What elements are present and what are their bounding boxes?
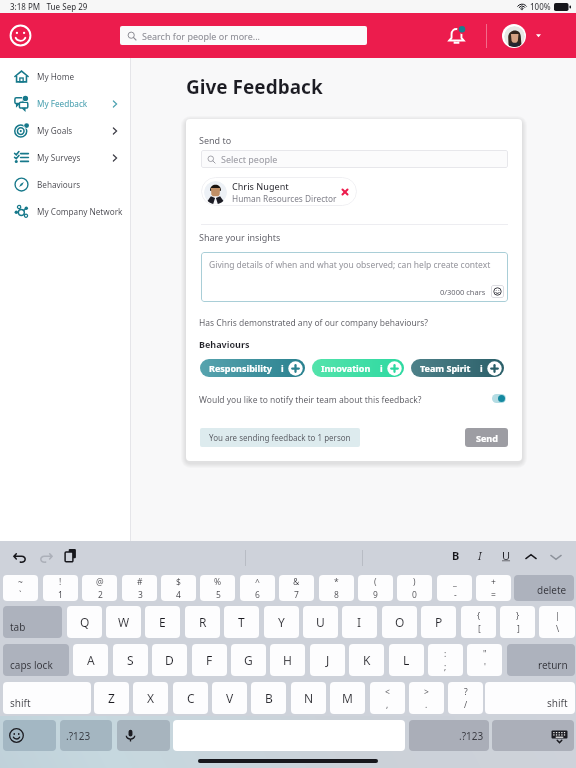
button[interactable]: ) bbox=[397, 575, 432, 601]
button[interactable]: My Feedback bbox=[0, 90, 131, 117]
button[interactable]: Previous bbox=[523, 549, 539, 565]
button[interactable]: F bbox=[192, 644, 227, 676]
button[interactable]: X bbox=[133, 682, 168, 714]
button[interactable]: Emoji bbox=[3, 720, 56, 751]
button[interactable]: Remove Chris Nugent bbox=[338, 185, 352, 199]
button[interactable]: % bbox=[200, 575, 235, 601]
button[interactable]: ? bbox=[448, 682, 483, 714]
staticText: .?123 bbox=[66, 729, 91, 743]
button[interactable]: My Home bbox=[0, 63, 131, 90]
button[interactable]: ~ bbox=[3, 575, 38, 601]
button[interactable]: return bbox=[507, 644, 575, 676]
button[interactable]: M bbox=[330, 682, 365, 714]
button[interactable]: Home bbox=[9, 24, 32, 47]
button[interactable]: Redo bbox=[38, 549, 54, 565]
button[interactable]: .?123 bbox=[60, 720, 112, 751]
button[interactable]: > bbox=[409, 682, 444, 714]
button[interactable]: Account menu bbox=[534, 31, 543, 40]
button[interactable]: Innovation bbox=[312, 359, 404, 377]
button[interactable]: B bbox=[251, 682, 286, 714]
button[interactable]: .?123 bbox=[409, 720, 489, 751]
button[interactable]: K bbox=[349, 644, 384, 676]
button[interactable]: Responsibility bbox=[200, 359, 305, 377]
button[interactable]: " bbox=[467, 644, 502, 676]
button[interactable]: ! bbox=[43, 575, 78, 601]
button[interactable]: Emoji bbox=[491, 285, 504, 298]
button[interactable]: < bbox=[370, 682, 405, 714]
button[interactable]: shift bbox=[485, 682, 575, 714]
button[interactable]: H bbox=[270, 644, 305, 676]
staticText: Giving details of when and what you obse… bbox=[209, 259, 491, 271]
button[interactable]: Notifications bbox=[447, 26, 466, 45]
button[interactable]: Behaviours bbox=[0, 171, 131, 198]
button[interactable]: My Goals bbox=[0, 117, 131, 144]
button[interactable]: : bbox=[428, 644, 463, 676]
button[interactable]: { bbox=[461, 606, 496, 638]
button[interactable]: Hide keyboard bbox=[492, 720, 574, 751]
button[interactable]: # bbox=[122, 575, 157, 601]
staticText: 3:18 PM Tue Sep 29 bbox=[10, 1, 88, 12]
staticText: My Feedback bbox=[37, 98, 88, 109]
button[interactable]: Italic bbox=[472, 547, 488, 563]
button[interactable]: shift bbox=[3, 682, 91, 714]
button[interactable]: Paste bbox=[63, 548, 78, 563]
button[interactable]: ( bbox=[358, 575, 393, 601]
staticText: Send bbox=[476, 432, 498, 444]
button[interactable]: } bbox=[500, 606, 535, 638]
staticText: > bbox=[424, 686, 429, 698]
button[interactable]: Profile bbox=[502, 24, 526, 48]
button[interactable]: U bbox=[303, 606, 338, 638]
button[interactable]: Underline bbox=[498, 547, 514, 563]
button[interactable]: V bbox=[212, 682, 247, 714]
button[interactable]: Giving details of when and what you obse… bbox=[201, 252, 508, 302]
button[interactable]: My Surveys bbox=[0, 144, 131, 171]
button[interactable]: E bbox=[145, 606, 180, 638]
button[interactable]: Bold bbox=[448, 547, 464, 563]
button[interactable]: T bbox=[224, 606, 259, 638]
staticText: .?123 bbox=[459, 729, 484, 743]
button[interactable]: Y bbox=[264, 606, 299, 638]
button[interactable]: I bbox=[342, 606, 377, 638]
button[interactable]: C bbox=[173, 682, 208, 714]
button[interactable]: Notify team toggle bbox=[492, 394, 506, 403]
button[interactable]: W bbox=[106, 606, 141, 638]
staticText: K bbox=[363, 652, 371, 668]
button[interactable]: ^ bbox=[240, 575, 275, 601]
button[interactable]: N bbox=[291, 682, 326, 714]
button[interactable]: O bbox=[382, 606, 417, 638]
button[interactable]: _ bbox=[437, 575, 472, 601]
button[interactable]: caps lock bbox=[3, 644, 69, 676]
staticText: Innovation bbox=[321, 362, 371, 374]
button[interactable]: J bbox=[310, 644, 345, 676]
button[interactable]: Search for people or more... bbox=[120, 26, 367, 45]
button[interactable]: My Company Network bbox=[0, 198, 131, 225]
staticText: B bbox=[452, 548, 460, 563]
button[interactable]: & bbox=[279, 575, 314, 601]
button[interactable]: P bbox=[421, 606, 456, 638]
button[interactable]: @ bbox=[82, 575, 117, 601]
button[interactable]: Z bbox=[94, 682, 129, 714]
button[interactable]: delete bbox=[514, 575, 574, 601]
button[interactable]: | bbox=[539, 606, 575, 638]
button[interactable]: tab bbox=[3, 606, 62, 638]
button[interactable]: Chris Nugent bbox=[201, 177, 357, 206]
button[interactable]: S bbox=[113, 644, 148, 676]
staticText: * bbox=[334, 576, 339, 588]
button[interactable]: D bbox=[152, 644, 187, 676]
button[interactable]: Team Spirit bbox=[411, 359, 504, 377]
button[interactable]: A bbox=[73, 644, 108, 676]
button[interactable]: $ bbox=[161, 575, 196, 601]
button[interactable]: Select people bbox=[201, 150, 508, 168]
button[interactable]: Voice input bbox=[117, 720, 170, 751]
button[interactable]: * bbox=[319, 575, 354, 601]
button[interactable]: R bbox=[185, 606, 220, 638]
button[interactable]: G bbox=[231, 644, 266, 676]
staticText: P bbox=[435, 614, 443, 630]
button[interactable]: Send bbox=[465, 428, 508, 447]
button[interactable]: Next bbox=[548, 549, 564, 565]
button[interactable]: Undo bbox=[12, 549, 28, 565]
button[interactable]: + bbox=[476, 575, 511, 601]
button[interactable]: Q bbox=[67, 606, 102, 638]
button[interactable]: L bbox=[389, 644, 424, 676]
